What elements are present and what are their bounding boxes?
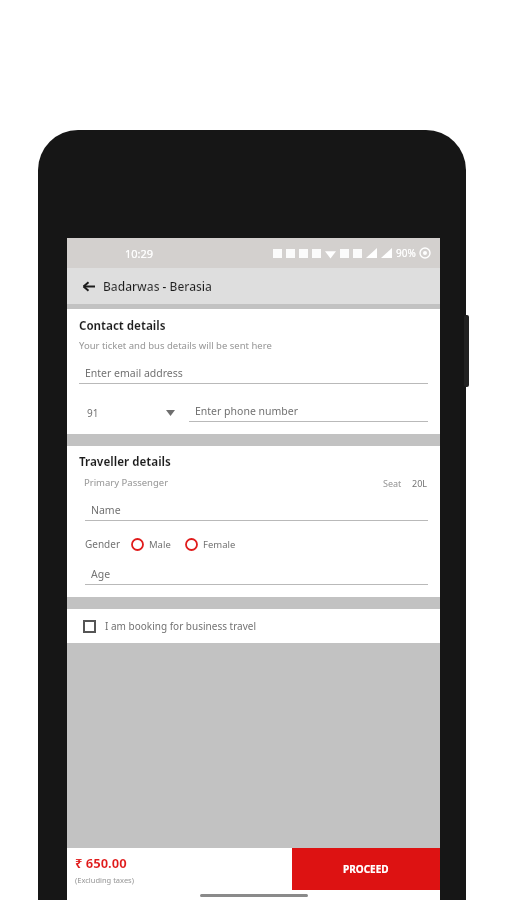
staticText: 20L [412,477,428,489]
staticText: Traveller details [79,454,171,470]
staticText: Gender [85,537,121,551]
staticText: Male [149,538,171,551]
staticText: Enter email address [85,366,183,380]
staticText: 10:29 [125,246,154,261]
staticText: I am booking for business travel [105,619,257,633]
staticText: Enter phone number [195,404,299,418]
button[interactable]: I am booking for business travel [67,609,440,643]
staticText: ₹ 650.00 [75,854,127,872]
staticText: Age [91,567,111,581]
staticText: Female [203,538,236,551]
staticText: Badarwas - Berasia [103,278,212,294]
button[interactable]: Female [185,538,236,551]
button[interactable]: Male [131,538,171,551]
button[interactable]: Back [75,273,101,299]
staticText: 91 [87,406,99,420]
staticText: Contact details [79,318,166,334]
button[interactable]: Name [85,503,428,521]
staticText: Your ticket and bus details will be sent… [79,339,272,352]
staticText: (Excluding taxes) [75,875,134,885]
button[interactable]: Age [85,567,428,585]
staticText: 90% [396,246,416,260]
staticText: PROCEED [343,862,389,876]
button[interactable]: Enter phone number [189,404,428,422]
button[interactable]: Enter email address [79,366,428,384]
button[interactable]: 91 [79,406,175,420]
staticText: Name [91,503,121,517]
staticText: Seat [383,477,402,489]
staticText: Primary Passenger [84,476,169,489]
button[interactable]: PROCEED [292,848,440,890]
